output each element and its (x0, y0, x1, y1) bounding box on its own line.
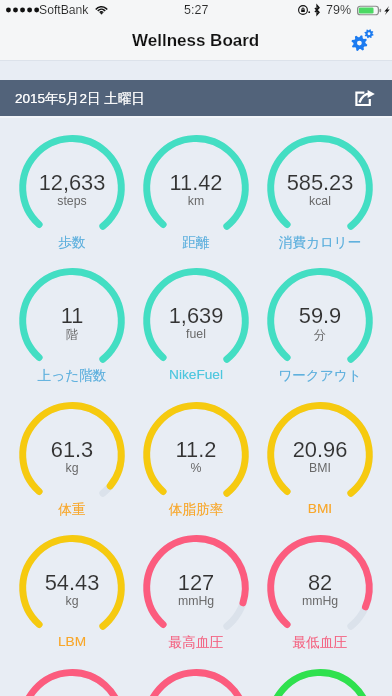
button[interactable]: 82 (258, 535, 382, 668)
button[interactable]: 59.9 (258, 268, 382, 401)
staticText: 20.96 (258, 437, 382, 461)
staticText: kg (10, 461, 134, 475)
staticText: 階 (10, 327, 134, 342)
staticText: 11 (10, 303, 134, 327)
staticText: 上った階数 (10, 367, 134, 384)
staticText: 59.9 (258, 303, 382, 327)
staticText: 歩数 (10, 234, 134, 251)
staticText: 127 (134, 570, 258, 594)
staticText: 最高血圧 (134, 634, 258, 651)
button[interactable] (134, 669, 258, 696)
button[interactable]: 11.42 (134, 135, 258, 268)
staticText: 1,639 (134, 303, 258, 327)
staticText: 体重 (10, 501, 134, 518)
staticText: 11.2 (134, 437, 258, 461)
staticText: 11.42 (134, 170, 258, 194)
button[interactable]: 20.96 (258, 402, 382, 535)
staticText: 体脂肪率 (134, 501, 258, 518)
staticText: fuel (134, 327, 258, 341)
button[interactable]: 585.23 (258, 135, 382, 268)
staticText: 12,633 (10, 170, 134, 194)
staticText: ワークアウト (258, 367, 382, 384)
button[interactable]: 127 (134, 535, 258, 668)
staticText: 5:27 (184, 3, 209, 17)
staticText: BMI (258, 501, 382, 516)
staticText: 分 (258, 327, 382, 342)
staticText: 距離 (134, 234, 258, 251)
button[interactable]: Share (350, 83, 380, 113)
button[interactable]: 54.43 (10, 535, 134, 668)
staticText: mmHg (258, 594, 382, 608)
button[interactable]: Settings (345, 23, 379, 57)
staticText: 2015年5月2日 土曜日 (15, 90, 145, 107)
button[interactable]: 11.2 (134, 402, 258, 535)
staticText: 61.3 (10, 437, 134, 461)
button[interactable]: 61.3 (10, 402, 134, 535)
staticText: kcal (258, 194, 382, 208)
staticText: 585.23 (258, 170, 382, 194)
staticText: SoftBank (39, 3, 89, 17)
staticText: kg (10, 594, 134, 608)
staticText: BMI (258, 461, 382, 475)
button[interactable] (258, 669, 382, 696)
button[interactable]: 12,633 (10, 135, 134, 268)
staticText: 最低血圧 (258, 634, 382, 651)
staticText: steps (10, 194, 134, 208)
staticText: 79% (326, 3, 352, 17)
staticText: 消費カロリー (258, 234, 382, 251)
staticText: km (134, 194, 258, 208)
staticText: 54.43 (10, 570, 134, 594)
staticText: LBM (10, 634, 134, 649)
staticText: mmHg (134, 594, 258, 608)
button[interactable]: 1,639 (134, 268, 258, 401)
staticText: NikeFuel (134, 367, 258, 382)
staticText: 82 (258, 570, 382, 594)
staticText: % (134, 461, 258, 475)
button[interactable]: 11 (10, 268, 134, 401)
staticText: Wellness Board (132, 31, 260, 50)
button[interactable] (10, 669, 134, 696)
